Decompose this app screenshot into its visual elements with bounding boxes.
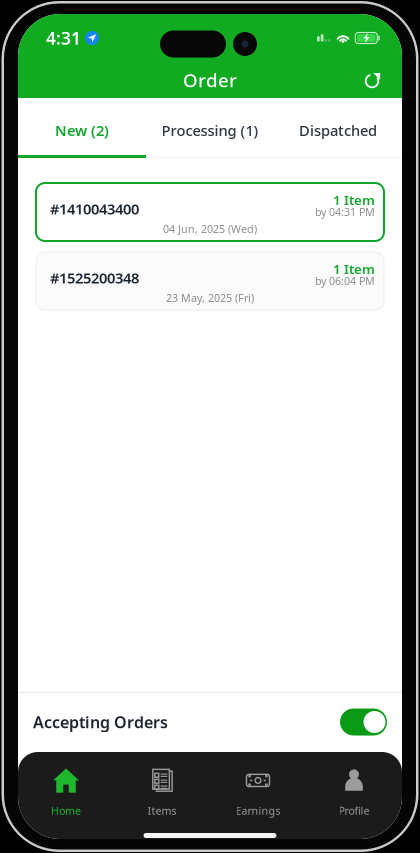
button[interactable]: #1410043400: [36, 183, 384, 241]
staticText: Home: [51, 803, 81, 818]
staticText: Order: [183, 68, 237, 92]
staticText: 1 Item: [333, 260, 375, 278]
staticText: New (2): [55, 120, 109, 140]
staticText: by 06:04 PM: [315, 274, 375, 288]
staticText: Processing (1): [161, 120, 258, 140]
button[interactable]: Accepting Orders: [18, 692, 402, 752]
staticText: Dispatched: [299, 120, 377, 140]
staticText: #1525200348: [50, 268, 139, 287]
staticText: 23 May, 2025 (Fri): [166, 291, 254, 305]
button[interactable]: Dispatched: [274, 98, 402, 158]
staticText: #1410043400: [50, 199, 139, 218]
button[interactable]: Home: [18, 752, 114, 825]
button[interactable]: Items: [114, 752, 210, 825]
button[interactable]: Refresh: [352, 63, 392, 97]
button[interactable]: Profile: [306, 752, 402, 825]
staticText: Earnings: [235, 803, 280, 818]
staticText: by 04:31 PM: [315, 205, 375, 219]
button[interactable]: New (2): [18, 98, 146, 158]
staticText: Items: [147, 803, 176, 818]
staticText: Profile: [338, 803, 369, 818]
staticText: 04 Jun, 2025 (Wed): [163, 222, 257, 236]
button[interactable]: #1525200348: [36, 252, 384, 310]
button[interactable]: Earnings: [210, 752, 306, 825]
staticText: 4:31: [46, 26, 81, 49]
staticText: 1 Item: [333, 191, 375, 209]
staticText: Accepting Orders: [33, 711, 168, 733]
button[interactable]: Processing (1): [146, 98, 274, 158]
